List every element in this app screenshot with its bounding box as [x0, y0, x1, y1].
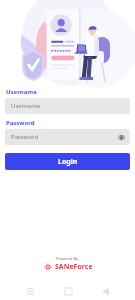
staticText: Powered By — [56, 256, 79, 261]
staticText: Password — [11, 133, 39, 141]
staticText: Username — [11, 102, 41, 110]
staticText: Username — [6, 88, 37, 96]
button[interactable]: Recents — [22, 283, 38, 299]
button[interactable]: Home — [60, 283, 76, 299]
button[interactable]: Password — [5, 129, 130, 145]
button[interactable]: Login — [5, 153, 130, 170]
button[interactable]: Back — [97, 283, 113, 299]
staticText: Login — [58, 157, 78, 167]
button[interactable]: Show password — [117, 133, 125, 141]
staticText: Password — [6, 119, 35, 127]
staticText: SANeForce — [55, 262, 93, 272]
button[interactable]: Username — [5, 98, 130, 114]
